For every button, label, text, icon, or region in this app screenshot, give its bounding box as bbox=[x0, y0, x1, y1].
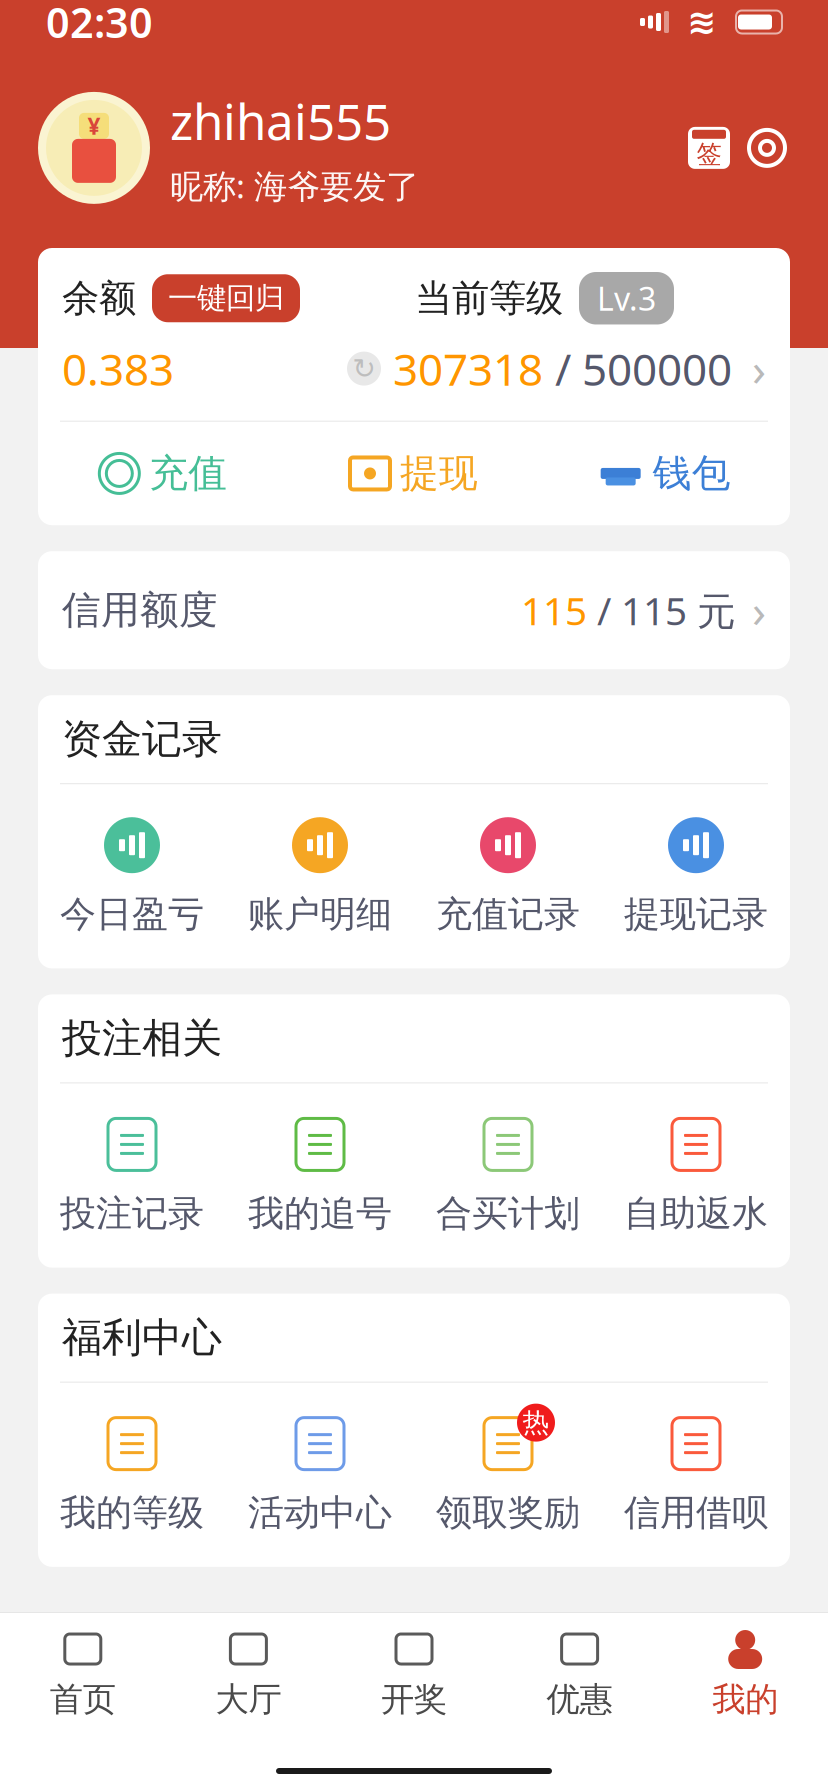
staticText: ↻ bbox=[352, 353, 375, 384]
staticText: ≋ bbox=[687, 2, 716, 42]
staticText: 首页 bbox=[50, 1679, 116, 1720]
button[interactable]: 开奖 bbox=[331, 1627, 497, 1720]
staticText: Lv.3 bbox=[597, 277, 656, 319]
staticText: 资金记录 bbox=[62, 715, 222, 764]
staticText: 充值记录 bbox=[436, 892, 580, 936]
staticText: ¥ bbox=[87, 111, 100, 141]
staticText: 我的等级 bbox=[60, 1491, 204, 1535]
staticText: / 115 元 bbox=[587, 584, 736, 636]
staticText: 热 bbox=[522, 1406, 549, 1439]
button[interactable]: 提现 bbox=[289, 444, 539, 503]
button[interactable]: 钱包 bbox=[539, 444, 790, 503]
staticText: 钱包 bbox=[653, 450, 731, 497]
staticText: 投注相关 bbox=[62, 1014, 222, 1063]
button[interactable]: 活动中心 bbox=[226, 1413, 414, 1535]
staticText: 大厅 bbox=[215, 1679, 281, 1720]
staticText: 提现 bbox=[400, 450, 478, 497]
button[interactable]: 合买计划 bbox=[414, 1113, 602, 1236]
staticText: 昵称: 海爷要发了 bbox=[170, 163, 419, 208]
staticText: 活动中心 bbox=[248, 1491, 392, 1535]
staticText: 账户明细 bbox=[248, 892, 392, 936]
button[interactable]: 我的追号 bbox=[226, 1113, 414, 1236]
button[interactable]: 充值记录 bbox=[414, 814, 602, 936]
staticText: 自助返水 bbox=[624, 1191, 768, 1236]
button[interactable]: 我的等级 bbox=[38, 1413, 226, 1535]
staticText: 投注记录 bbox=[60, 1191, 204, 1236]
staticText: / 500000 bbox=[555, 339, 732, 398]
button[interactable]: 签到 bbox=[688, 127, 730, 169]
button[interactable]: 设置 bbox=[744, 125, 790, 171]
staticText: 当前等级 bbox=[415, 275, 563, 321]
staticText: 02:30 bbox=[46, 0, 153, 49]
staticText: 充值 bbox=[149, 450, 227, 497]
button[interactable]: 信用借呗 bbox=[602, 1413, 790, 1535]
button[interactable]: 优惠 bbox=[497, 1627, 662, 1720]
staticText: 合买计划 bbox=[436, 1191, 580, 1236]
button[interactable]: 充值 bbox=[38, 444, 289, 503]
button[interactable]: 信用额度 bbox=[38, 551, 790, 669]
staticText: 信用额度 bbox=[62, 586, 218, 634]
staticText: 我的 bbox=[712, 1679, 778, 1720]
staticText: zhihai555 bbox=[170, 88, 391, 153]
button[interactable]: 账户明细 bbox=[226, 814, 414, 936]
staticText: 领取奖励 bbox=[436, 1491, 580, 1535]
button[interactable]: 投注记录 bbox=[38, 1113, 226, 1236]
staticText: › bbox=[752, 580, 766, 640]
button[interactable]: 首页 bbox=[0, 1627, 166, 1720]
button[interactable]: 自助返水 bbox=[602, 1113, 790, 1236]
staticText: 307318 bbox=[393, 339, 543, 398]
staticText: 信用借呗 bbox=[624, 1491, 768, 1535]
staticText: › bbox=[752, 338, 766, 399]
staticText: 余额 bbox=[62, 275, 136, 321]
staticText: 一键回归 bbox=[168, 280, 284, 316]
staticText: 优惠 bbox=[547, 1679, 613, 1720]
staticText: 今日盈亏 bbox=[60, 892, 204, 936]
button[interactable]: 提现记录 bbox=[602, 814, 790, 936]
button[interactable]: 今日盈亏 bbox=[38, 814, 226, 936]
staticText: 我的追号 bbox=[248, 1191, 392, 1236]
staticText: 0.383 bbox=[62, 339, 174, 398]
staticText: 115 bbox=[521, 584, 587, 636]
staticText: 提现记录 bbox=[624, 892, 768, 936]
staticText: 福利中心 bbox=[62, 1313, 222, 1362]
button[interactable]: 我的 bbox=[662, 1627, 828, 1720]
button[interactable]: 热 bbox=[414, 1413, 602, 1535]
staticText: 开奖 bbox=[381, 1679, 447, 1720]
staticText: 签 bbox=[696, 139, 721, 170]
button[interactable]: 大厅 bbox=[166, 1627, 331, 1720]
